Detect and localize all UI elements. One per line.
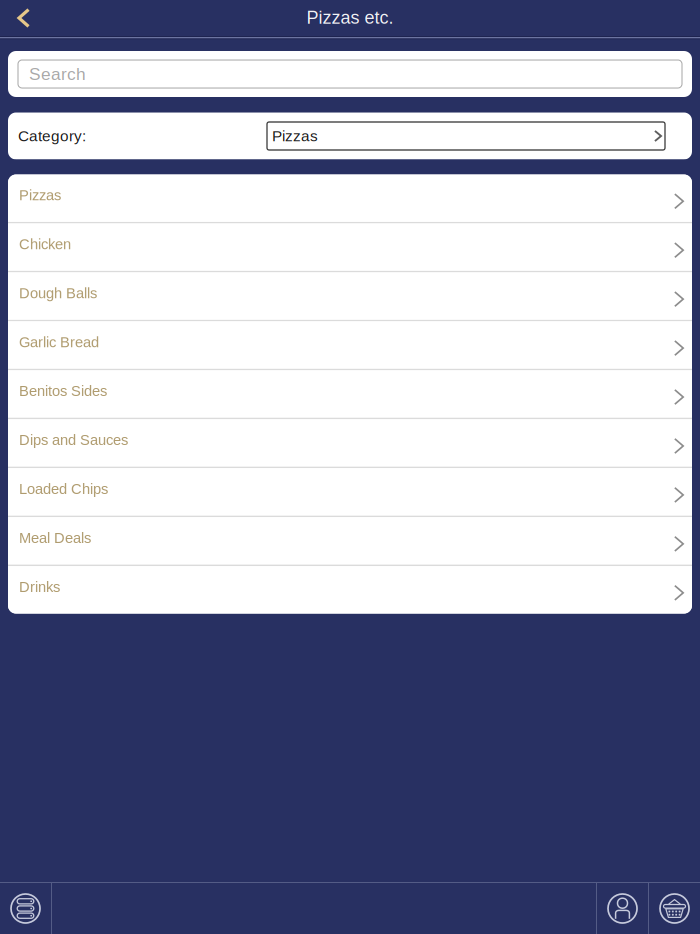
staticText: Dips and Sauces <box>19 432 128 448</box>
button[interactable]: Loaded Chips <box>8 468 692 516</box>
staticText: Benitos Sides <box>19 383 107 399</box>
staticText: Category: <box>18 127 86 144</box>
button[interactable]: Account <box>597 883 648 934</box>
staticText: Pizzas <box>19 187 61 203</box>
button[interactable]: Pizzas <box>267 122 665 150</box>
button[interactable]: Chicken <box>8 223 692 271</box>
button[interactable]: Benitos Sides <box>8 370 692 418</box>
staticText: Drinks <box>19 579 60 595</box>
button[interactable]: Basket <box>649 883 700 934</box>
staticText: Pizzas etc. <box>306 7 393 27</box>
button[interactable]: Menu <box>0 883 51 934</box>
button[interactable]: Meal Deals <box>8 517 692 565</box>
button[interactable]: Drinks <box>8 566 692 614</box>
button[interactable]: Back <box>0 1 44 35</box>
staticText: Dough Balls <box>19 285 97 301</box>
staticText: Meal Deals <box>19 530 91 546</box>
staticText: Loaded Chips <box>19 481 108 497</box>
staticText: Garlic Bread <box>19 334 99 350</box>
button[interactable]: Pizzas <box>8 174 692 222</box>
button[interactable]: Dips and Sauces <box>8 419 692 467</box>
button[interactable]: Dough Balls <box>8 272 692 320</box>
staticText: Search <box>29 64 86 84</box>
staticText: Pizzas <box>272 127 318 144</box>
button[interactable]: Garlic Bread <box>8 321 692 369</box>
staticText: Chicken <box>19 236 71 252</box>
